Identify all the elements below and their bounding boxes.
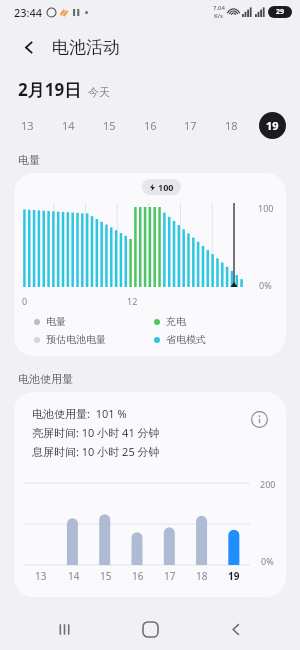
staticText: 14 <box>68 569 80 583</box>
staticText: 29 <box>276 7 285 17</box>
staticText: 电量 <box>18 153 40 167</box>
button[interactable]: Back <box>214 608 258 650</box>
staticText: 13 <box>21 118 34 133</box>
staticText: 16 <box>132 569 144 583</box>
staticText: 充电 <box>166 315 186 328</box>
staticText: 16 <box>144 118 157 133</box>
button[interactable]: Back <box>12 30 46 64</box>
button[interactable]: 17 <box>177 112 204 139</box>
staticText: 电量 <box>46 315 66 328</box>
staticText: 电池使用量: 101 % <box>32 406 127 421</box>
staticText: 17 <box>164 569 176 583</box>
button[interactable]: 13 <box>14 112 41 139</box>
staticText: 15 <box>103 118 116 133</box>
staticText: 亮屏时间: 10 小时 41 分钟 <box>32 425 160 440</box>
staticText: 0% <box>261 555 274 567</box>
button[interactable]: 100 <box>14 173 286 356</box>
staticText: 200 <box>260 478 276 490</box>
staticText: 7.04 <box>213 4 225 12</box>
staticText: 100 <box>158 181 174 193</box>
button[interactable]: 18 <box>218 112 245 139</box>
staticText: K/s <box>214 12 224 20</box>
button[interactable]: Recent apps <box>42 608 86 650</box>
staticText: 今天 <box>88 85 110 99</box>
staticText: 23:44 <box>14 5 43 20</box>
staticText: 电池活动 <box>52 37 120 58</box>
staticText: 13 <box>35 569 47 583</box>
staticText: 100 <box>258 202 274 214</box>
staticText: 14 <box>62 118 75 133</box>
staticText: 电池使用量 <box>18 372 73 386</box>
staticText: 0% <box>259 279 272 291</box>
button[interactable]: Home <box>128 608 172 650</box>
staticText: 18 <box>225 118 238 133</box>
button[interactable]: 19 <box>259 112 286 139</box>
staticText: 15 <box>100 569 112 583</box>
staticText: 0 <box>22 295 28 307</box>
button[interactable]: 15 <box>96 112 123 139</box>
staticText: 2月19日 <box>18 78 82 101</box>
staticText: 省电模式 <box>166 333 206 346</box>
button[interactable]: Info <box>246 406 272 432</box>
button[interactable]: 14 <box>55 112 82 139</box>
staticText: 19 <box>228 569 240 583</box>
staticText: 12 <box>127 295 138 307</box>
staticText: 18 <box>196 569 208 583</box>
staticText: 预估电池电量 <box>46 333 106 346</box>
button[interactable]: 16 <box>137 112 164 139</box>
staticText: 息屏时间: 10 小时 25 分钟 <box>32 444 160 459</box>
staticText: 17 <box>184 118 197 133</box>
staticText: 19 <box>266 118 279 133</box>
button[interactable]: 电池使用量: 101 % <box>14 392 286 597</box>
